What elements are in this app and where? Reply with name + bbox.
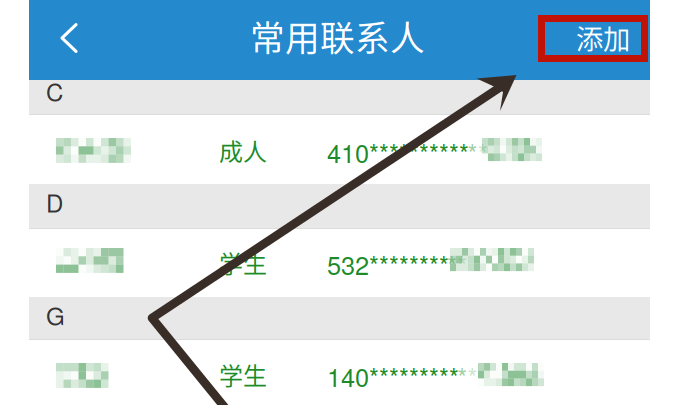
button[interactable]: 成人	[29, 115, 650, 184]
button[interactable]: 学生	[29, 229, 650, 297]
button[interactable]: 添加	[534, 21, 639, 54]
staticText: 410**********	[327, 134, 469, 170]
staticText: 添加	[576, 18, 630, 57]
staticText: 学生	[219, 245, 267, 280]
staticText: 140*********	[327, 358, 459, 394]
staticText: 532********	[327, 246, 449, 282]
staticText: C	[46, 74, 63, 108]
staticText: G	[46, 298, 65, 332]
staticText: *	[447, 246, 457, 282]
staticText: D	[46, 185, 63, 219]
staticText: *	[457, 246, 467, 282]
staticText: *	[478, 134, 488, 170]
button[interactable]: Back	[29, 0, 109, 80]
staticText: *	[467, 358, 477, 394]
staticText: *	[457, 358, 467, 394]
button[interactable]: 学生	[29, 340, 650, 405]
staticText: 常用联系人	[250, 11, 425, 61]
staticText: *	[467, 134, 477, 170]
staticText: 成人	[219, 133, 267, 168]
staticText: 学生	[219, 357, 267, 392]
